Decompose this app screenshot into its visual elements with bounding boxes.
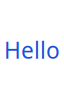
staticText: Hello xyxy=(4,35,60,65)
